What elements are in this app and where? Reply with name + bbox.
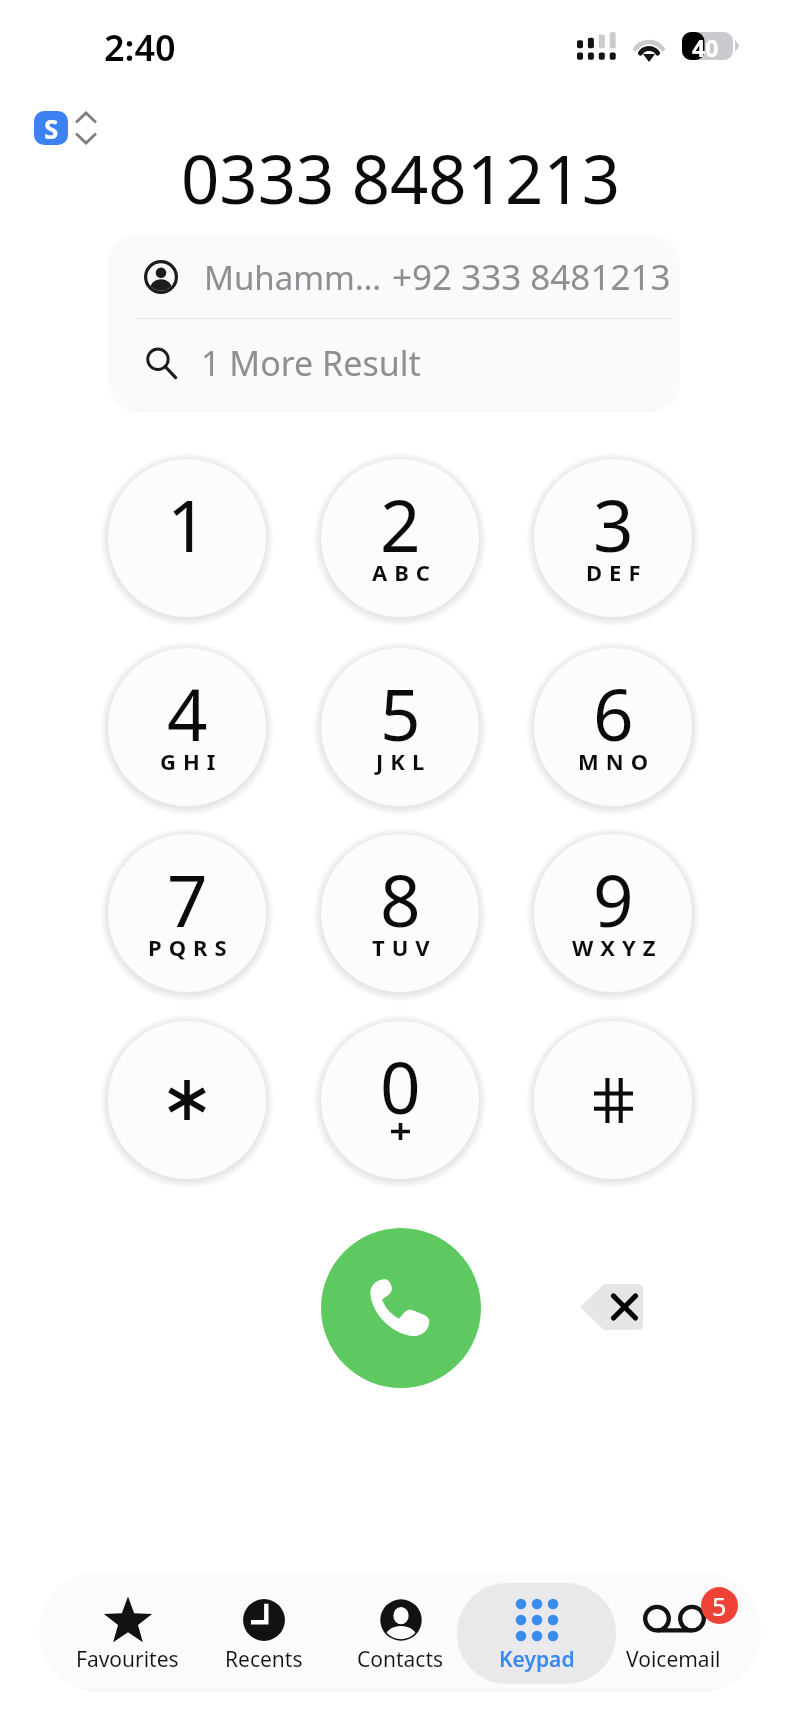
button[interactable]: 9 [534, 834, 692, 992]
button[interactable] [108, 1021, 266, 1179]
button[interactable]: Delete [567, 1267, 655, 1347]
staticText: TUV [372, 932, 437, 962]
staticText: MNO [578, 746, 656, 776]
button[interactable]: 5 [321, 648, 479, 806]
button[interactable]: Call [321, 1228, 481, 1388]
staticText: WXYZ [572, 932, 663, 962]
staticText: 0 [380, 1038, 421, 1135]
button[interactable] [534, 1021, 692, 1179]
button[interactable]: 5 [594, 1583, 753, 1684]
staticText: ABC [372, 557, 437, 587]
staticText: PQRS [148, 932, 234, 962]
staticText: JKL [376, 746, 432, 776]
staticText: +92 333 8481213 [392, 253, 671, 301]
staticText: DEF [586, 557, 648, 587]
staticText: 6 [593, 665, 634, 762]
staticText: 9 [593, 851, 634, 948]
staticText: 5 [712, 1589, 727, 1623]
button[interactable]: 1 [108, 459, 266, 617]
button[interactable]: Keypad [457, 1583, 616, 1684]
staticText: 5 [380, 665, 421, 762]
button[interactable]: 3 [534, 459, 692, 617]
button[interactable]: Favourites [48, 1583, 207, 1684]
staticText: Keypad [499, 1645, 575, 1674]
button[interactable]: 0 [321, 1021, 479, 1179]
button[interactable]: Switch SIM [72, 108, 100, 148]
staticText: 8 [380, 851, 421, 948]
staticText: 2 [380, 476, 421, 573]
staticText: 4 [167, 665, 208, 762]
button[interactable]: 8 [321, 834, 479, 992]
staticText: Recents [225, 1645, 303, 1674]
button[interactable]: 2 [321, 459, 479, 617]
staticText: 40 [692, 32, 719, 60]
button[interactable]: SIM selector [34, 111, 68, 145]
staticText: Contacts [357, 1645, 444, 1674]
button[interactable]: 1 More Result [108, 319, 680, 410]
button[interactable]: 7 [108, 834, 266, 992]
button[interactable]: Muhamm… [108, 235, 680, 318]
staticText: GHI [160, 746, 223, 776]
staticText: 1 More Result [201, 340, 421, 386]
staticText: 2:40 [104, 23, 176, 72]
staticText: Muhamm… [204, 255, 382, 300]
staticText: 0333 8481213 [181, 132, 620, 223]
button[interactable]: 6 [534, 648, 692, 806]
staticText: 1 [167, 476, 208, 573]
staticText: 7 [167, 851, 208, 948]
button[interactable]: Contacts [321, 1583, 480, 1684]
staticText: 3 [593, 476, 634, 573]
staticText: S [44, 111, 59, 145]
button[interactable]: 4 [108, 648, 266, 806]
button[interactable]: Recents [184, 1583, 343, 1684]
staticText: Favourites [76, 1645, 179, 1674]
staticText: Voicemail [626, 1645, 721, 1674]
